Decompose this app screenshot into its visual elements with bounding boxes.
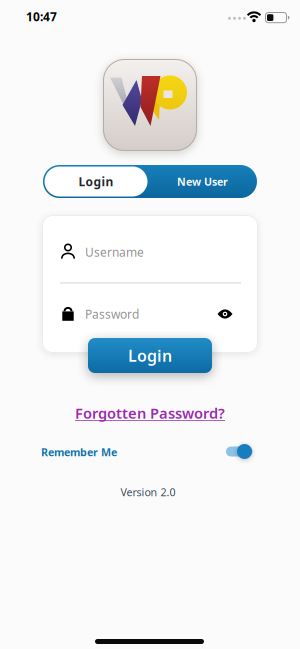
staticText: Password — [85, 306, 139, 322]
staticText: Username — [85, 244, 144, 260]
staticText: Login — [128, 345, 172, 366]
button[interactable]: New User — [149, 165, 256, 198]
button[interactable]: Login — [88, 338, 212, 373]
staticText: Forgotten Password? — [75, 403, 225, 423]
staticText: Version 2.0 — [120, 485, 175, 499]
staticText: 10:47 — [26, 8, 57, 24]
staticText: New User — [177, 174, 228, 189]
button[interactable]: Login — [44, 166, 147, 196]
button[interactable]: Forgotten Password? — [75, 403, 225, 423]
staticText: Remember Me — [41, 445, 117, 459]
staticText: Login — [78, 173, 113, 189]
button[interactable]: Remember Me — [226, 442, 256, 460]
button[interactable]: Show password — [217, 308, 233, 320]
button[interactable]: Username — [60, 242, 241, 283]
button[interactable]: Password — [60, 299, 212, 329]
